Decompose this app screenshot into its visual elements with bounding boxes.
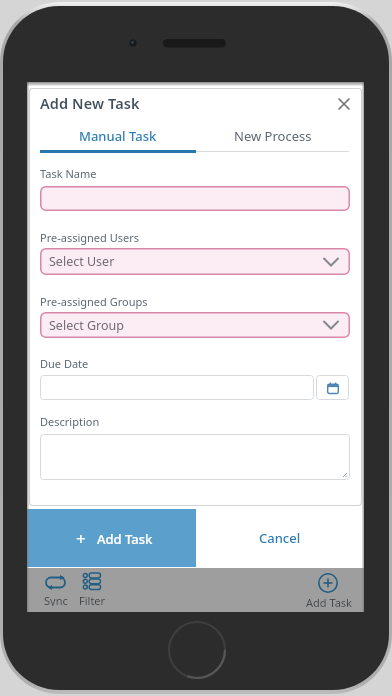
staticText: Filter [79,593,106,606]
button[interactable]: Cancel [196,509,364,567]
button[interactable]: + [27,509,196,567]
staticText: Pre-assigned Users [40,230,139,245]
staticText: Add Task [306,595,352,608]
button[interactable]: New Process [196,123,349,149]
button[interactable] [332,92,356,116]
staticText: Cancel [259,529,301,547]
staticText: Task Name [40,166,97,181]
staticText: New Process [234,127,312,145]
staticText: Select User [49,253,115,270]
button[interactable]: Add Task [300,570,358,610]
staticText: Add Task [97,530,153,548]
staticText: Select Group [49,317,124,334]
button[interactable] [40,375,314,400]
staticText: Description [40,414,100,429]
staticText: Manual Task [79,127,157,145]
staticText: Sync [44,593,68,606]
button[interactable]: Select User [40,248,350,275]
staticText: Pre-assigned Groups [40,294,148,309]
button[interactable] [316,375,349,400]
button[interactable] [40,186,350,211]
staticText: + [76,527,86,550]
button[interactable]: Filter [71,570,113,610]
staticText: Due Date [40,356,89,371]
button[interactable]: Manual Task [40,123,196,149]
staticText: Add New Task [40,93,140,113]
button[interactable]: Sync [34,570,78,610]
button[interactable]: Select Group [40,312,350,338]
